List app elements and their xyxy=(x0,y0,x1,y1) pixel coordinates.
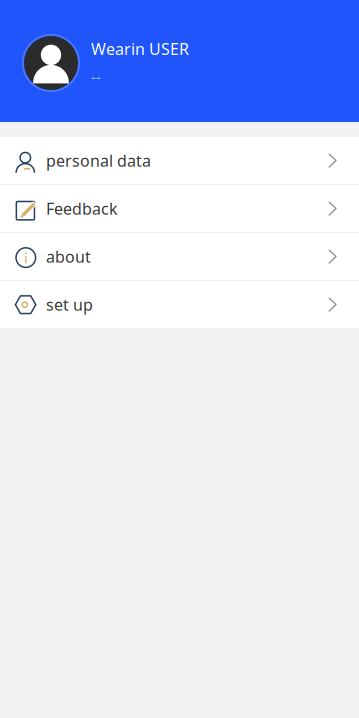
button[interactable]: set up xyxy=(0,281,359,328)
button[interactable]: Feedback xyxy=(0,185,359,232)
button[interactable]: Wearin USER xyxy=(0,0,359,122)
staticText: Wearin USER xyxy=(91,38,189,59)
staticText: Feedback xyxy=(46,198,118,219)
button[interactable]: about xyxy=(0,233,359,280)
button[interactable]: personal data xyxy=(0,137,359,184)
staticText: about xyxy=(46,246,91,267)
staticText: set up xyxy=(46,294,93,315)
staticText: -- xyxy=(91,67,101,87)
staticText: personal data xyxy=(46,150,151,171)
